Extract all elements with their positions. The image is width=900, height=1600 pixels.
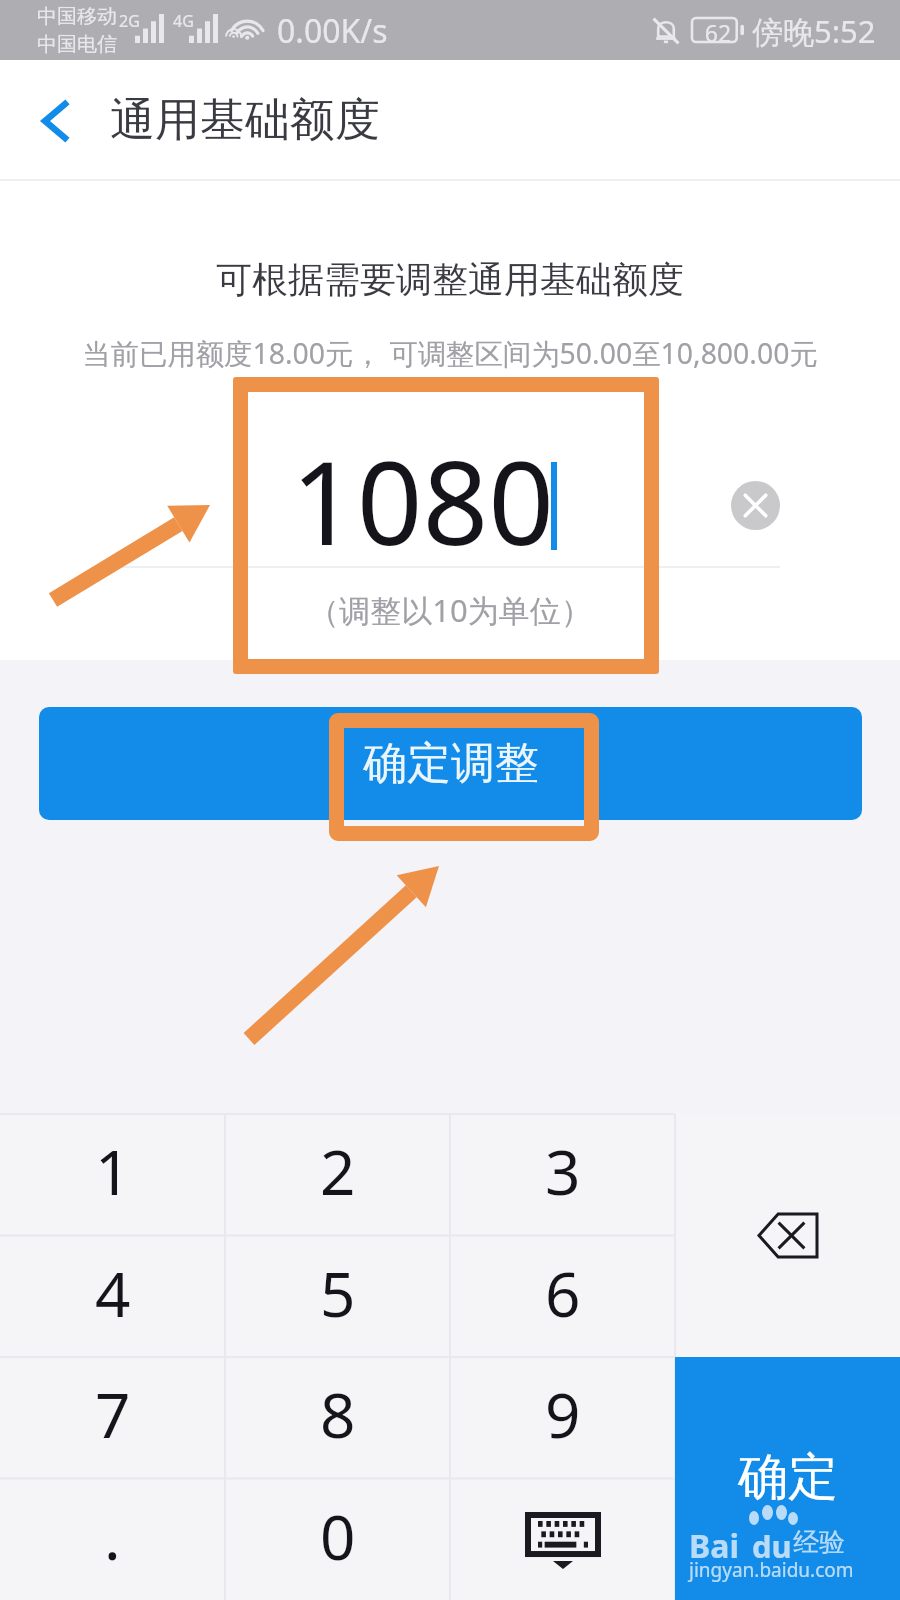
staticText: . [104, 1494, 121, 1578]
staticText: jingyan.baidu.com [689, 1557, 854, 1583]
staticText: du [752, 1525, 792, 1567]
staticText: Bai [689, 1524, 740, 1568]
staticText: 傍晚5:52 [752, 10, 876, 52]
staticText: 4 [95, 1251, 131, 1335]
button[interactable]: 确定 [675, 1357, 900, 1600]
button[interactable]: 2 [225, 1114, 450, 1236]
staticText: 中国移动 [37, 4, 117, 29]
staticText: 1 [95, 1129, 131, 1213]
button[interactable]: 9 [450, 1357, 675, 1479]
button[interactable]: 3 [450, 1114, 675, 1236]
staticText: （调整以10为单位） [0, 589, 900, 631]
staticText: 8 [320, 1372, 356, 1456]
staticText: 1080 [291, 422, 555, 579]
staticText: 5 [320, 1251, 356, 1335]
button[interactable]: . [0, 1479, 225, 1600]
staticText: 2 [320, 1129, 356, 1213]
staticText: 通用基础额度 [110, 92, 380, 149]
staticText: 经验 [793, 1526, 845, 1559]
staticText: 7 [95, 1372, 131, 1456]
staticText: 确定 [738, 1446, 838, 1509]
staticText: 6 [545, 1251, 581, 1335]
button[interactable]: Backspace [675, 1114, 900, 1357]
button[interactable]: 确定调整 [39, 707, 862, 820]
staticText: 2G [119, 10, 140, 32]
button[interactable]: 1 [0, 1114, 225, 1236]
staticText: 3 [545, 1129, 581, 1213]
button[interactable]: 5 [225, 1236, 450, 1358]
button[interactable]: Clear [712, 462, 798, 548]
staticText: 62 [699, 17, 737, 48]
staticText: 可根据需要调整通用基础额度 [0, 257, 900, 302]
staticText: 4G [173, 10, 194, 32]
button[interactable]: 7 [0, 1357, 225, 1479]
staticText: 0.00K/s [277, 9, 388, 53]
button[interactable]: 6 [450, 1236, 675, 1358]
staticText: 9 [545, 1372, 581, 1456]
button[interactable]: 4 [0, 1236, 225, 1358]
staticText: 0 [320, 1494, 356, 1578]
button[interactable]: 0 [225, 1479, 450, 1600]
button[interactable]: Hide keyboard [450, 1479, 675, 1600]
button[interactable]: Back [0, 66, 110, 176]
staticText: 确定调整 [363, 736, 539, 791]
staticText: 当前已用额度18.00元， 可调整区间为50.00至10,800.00元 [0, 334, 900, 373]
button[interactable]: 8 [225, 1357, 450, 1479]
staticText: 中国电信 [37, 32, 117, 57]
